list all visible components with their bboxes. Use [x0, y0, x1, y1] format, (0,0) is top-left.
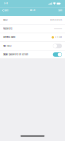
button[interactable]: SSID — [0, 16, 65, 25]
staticText: Password — [3, 27, 12, 30]
staticText: Hide SSID — [3, 45, 11, 47]
staticText: SSID — [3, 19, 7, 21]
button[interactable]: Wireless band — [0, 33, 65, 42]
staticText: Display password on screen — [3, 53, 28, 56]
staticText: Back — [4, 9, 8, 12]
staticText: Wi-Fi — [29, 9, 35, 12]
staticText: 2.4 GHz — [55, 36, 62, 38]
staticText: MyNetwork — [50, 19, 62, 21]
button[interactable]: Back — [0, 7, 10, 14]
button[interactable]: Display password on screen — [0, 50, 65, 59]
staticText: •••••••• — [54, 27, 62, 30]
staticText: Save — [58, 9, 62, 12]
staticText: 9:41 — [4, 2, 8, 5]
button[interactable]: Password — [0, 25, 65, 33]
staticText: Wireless band — [3, 36, 15, 38]
button[interactable]: Save — [55, 7, 65, 14]
button[interactable]: Hide SSID — [0, 42, 65, 50]
